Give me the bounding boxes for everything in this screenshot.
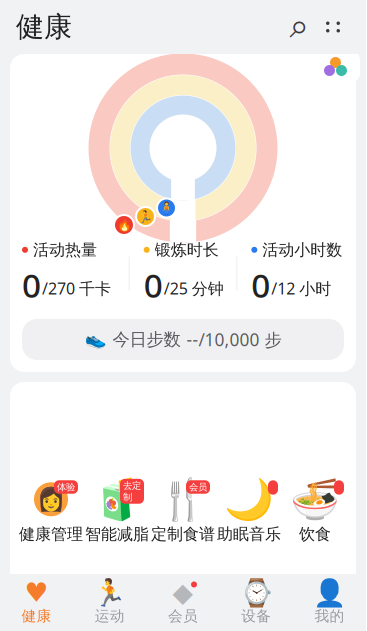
staticText: 会员 <box>189 481 207 493</box>
staticText: 🌙 <box>224 476 274 522</box>
button[interactable]: 👤 <box>293 574 366 631</box>
staticText: 设备 <box>241 607 271 625</box>
staticText: 体验 <box>57 481 75 493</box>
staticText: /25 分钟 <box>164 278 224 299</box>
staticText: 🍴 <box>158 476 208 522</box>
staticText: 去定制 <box>123 480 141 503</box>
button[interactable]: 活动详情 <box>311 50 360 83</box>
button[interactable]: 🌙 <box>216 480 282 544</box>
button[interactable]: 搜索 <box>282 10 316 44</box>
button[interactable]: 🏃 <box>73 574 146 631</box>
button[interactable]: ♥ <box>0 574 73 631</box>
button[interactable]: ⌚ <box>220 574 293 631</box>
staticText: 👩 <box>37 486 65 512</box>
staticText: 👤 <box>313 577 346 608</box>
staticText: /270 千卡 <box>42 278 111 299</box>
staticText: 会员 <box>168 607 198 625</box>
staticText: 我的 <box>314 607 344 625</box>
staticText: 🏃 <box>138 210 153 223</box>
staticText: 🏃 <box>93 577 126 608</box>
button[interactable]: 🧃 <box>84 480 150 544</box>
staticText: 健康 <box>16 10 72 44</box>
staticText: 智能减脂 <box>85 524 149 544</box>
staticText: /12 小时 <box>271 278 331 299</box>
button[interactable]: 更多 <box>316 10 350 44</box>
staticText: ⌚ <box>240 577 273 608</box>
staticText: 饮食 <box>299 524 331 544</box>
staticText: 助眠音乐 <box>217 524 281 544</box>
staticText: 今日步数 <box>112 329 180 350</box>
button[interactable]: 🍜 <box>282 480 348 544</box>
staticText: 活动热量 <box>33 240 97 260</box>
staticText: 0 <box>144 263 163 307</box>
staticText: 运动 <box>95 607 125 625</box>
staticText: 活动小时数 <box>262 240 342 260</box>
staticText: 健康 <box>22 607 52 625</box>
staticText: 健康管理 <box>19 524 83 544</box>
staticText: 锻炼时长 <box>155 240 219 260</box>
staticText: 👟 <box>84 329 106 349</box>
button[interactable]: 🍴 <box>150 480 216 544</box>
staticText: ♥ <box>25 577 49 608</box>
button[interactable]: 👩 <box>18 480 84 544</box>
staticText: 定制食谱 <box>151 524 215 544</box>
staticText: 0 <box>22 263 41 307</box>
button[interactable]: 👟 <box>22 319 344 360</box>
staticText: 🍜 <box>290 476 340 522</box>
staticText: --/10,000 步 <box>186 328 281 351</box>
staticText: 🧃 <box>92 476 142 522</box>
staticText: 🔥 <box>116 218 131 232</box>
staticText: 🧍 <box>159 201 174 215</box>
staticText: ⌕ <box>289 10 308 44</box>
button[interactable]: ◆ <box>146 574 220 631</box>
staticText: 0 <box>251 263 270 307</box>
staticText: ◆ <box>172 577 193 608</box>
